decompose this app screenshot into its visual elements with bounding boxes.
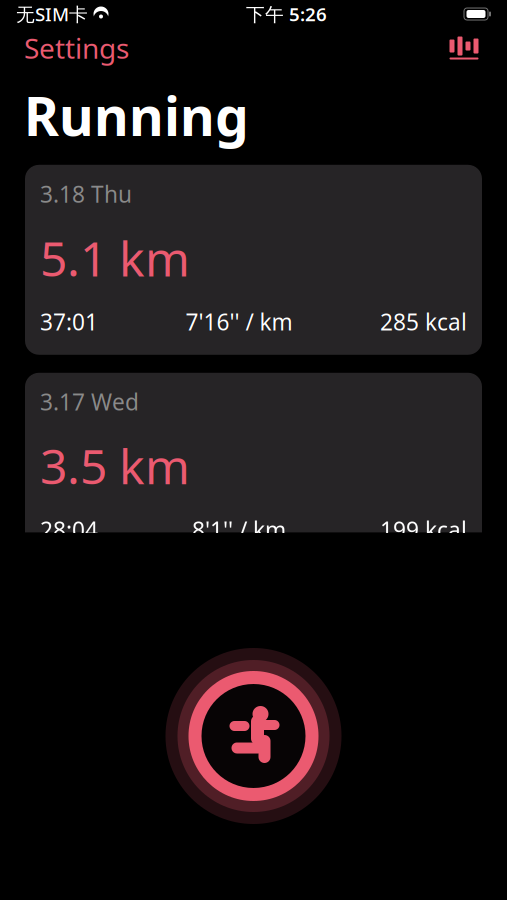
- staticText: 199 kcal: [380, 515, 467, 545]
- button[interactable]: 3.11 Thu: [25, 789, 482, 900]
- staticText: Running: [24, 80, 249, 151]
- button[interactable]: 3.14 Sun: [25, 581, 482, 771]
- button[interactable]: 3.18 Thu: [25, 165, 482, 355]
- staticText: Settings: [24, 29, 129, 67]
- staticText: 3.18 Thu: [40, 179, 132, 209]
- staticText: 8'1'' / km: [192, 515, 286, 545]
- staticText: 285 kcal: [380, 307, 467, 337]
- button[interactable]: 3.17 Wed: [25, 373, 482, 563]
- staticText: 5.1 km: [40, 226, 190, 290]
- staticText: 7'12'' / km: [185, 723, 292, 753]
- staticText: 3.5 km: [40, 434, 190, 498]
- staticText: 37:01: [40, 307, 98, 337]
- staticText: 3.2 km: [40, 642, 190, 705]
- staticText: 28:04: [40, 515, 98, 545]
- staticText: 3.17 Wed: [40, 387, 139, 417]
- staticText: 无SIM卡: [16, 2, 88, 26]
- button[interactable]: Settings: [24, 29, 129, 67]
- staticText: 7'16'' / km: [185, 307, 292, 337]
- button[interactable]: Statistics: [443, 30, 485, 66]
- staticText: 下午 5:26: [246, 2, 327, 26]
